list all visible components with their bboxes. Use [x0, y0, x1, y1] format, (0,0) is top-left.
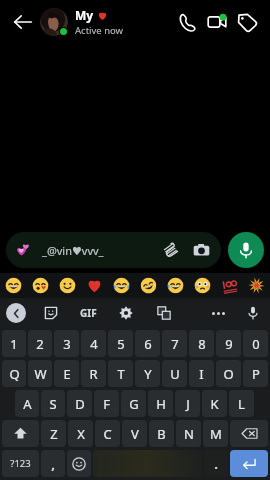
button[interactable]: X: [68, 420, 93, 447]
button[interactable]: Backspace: [230, 420, 268, 447]
button[interactable]: E: [54, 360, 79, 387]
button[interactable]: Tag: [232, 7, 262, 37]
staticText: Z: [50, 425, 58, 443]
button[interactable]: 0: [243, 330, 268, 357]
button[interactable]: 6: [135, 330, 160, 357]
button[interactable]: P: [243, 360, 268, 387]
button[interactable]: S: [41, 390, 65, 417]
staticText: E: [63, 365, 71, 383]
staticText: H: [156, 395, 166, 413]
staticText: X: [77, 425, 85, 443]
button[interactable]: F: [94, 390, 119, 417]
button[interactable]: M: [203, 420, 228, 447]
button[interactable]: D: [67, 390, 92, 417]
staticText: U: [170, 365, 180, 383]
button[interactable]: _@vin♥vvv_: [6, 232, 221, 268]
button[interactable]: 5: [108, 330, 133, 357]
staticText: GIF: [80, 306, 97, 320]
button[interactable]: .: [204, 450, 228, 477]
button[interactable]: H: [148, 390, 173, 417]
button[interactable]: L: [229, 390, 254, 417]
button[interactable]: My: [40, 7, 172, 37]
button[interactable]: O: [216, 360, 241, 387]
staticText: 7: [171, 335, 179, 353]
staticText: 2: [36, 335, 44, 353]
staticText: 9: [225, 335, 233, 353]
staticText: M: [210, 425, 222, 443]
button[interactable]: Space: [93, 450, 202, 477]
staticText: B: [157, 425, 166, 443]
button[interactable]: T: [108, 360, 133, 387]
button[interactable]: Emoji: [189, 273, 216, 298]
staticText: 1: [10, 335, 18, 353]
staticText: V: [131, 425, 139, 443]
button[interactable]: ?123: [2, 450, 39, 477]
button[interactable]: Emoji: [108, 273, 135, 298]
button[interactable]: G: [121, 390, 146, 417]
staticText: _@vin♥vvv_: [42, 243, 161, 258]
button[interactable]: 3: [54, 330, 79, 357]
button[interactable]: I: [189, 360, 214, 387]
button[interactable]: Voice call: [172, 7, 202, 37]
button[interactable]: Voice message: [228, 232, 264, 268]
button[interactable]: U: [162, 360, 187, 387]
button[interactable]: Enter: [230, 450, 268, 477]
button[interactable]: 1: [2, 330, 26, 357]
button[interactable]: N: [176, 420, 201, 447]
staticText: .: [214, 455, 218, 473]
button[interactable]: Translate: [153, 302, 175, 324]
button[interactable]: GIF: [78, 304, 99, 322]
button[interactable]: V: [122, 420, 147, 447]
button[interactable]: Emoji: [0, 273, 27, 298]
button[interactable]: Q: [2, 360, 26, 387]
staticText: 6: [144, 335, 152, 353]
staticText: I: [199, 365, 204, 383]
button[interactable]: Emoji: [54, 273, 81, 298]
button[interactable]: Z: [41, 420, 66, 447]
staticText: 4: [90, 335, 98, 353]
button[interactable]: K: [202, 390, 227, 417]
staticText: K: [210, 395, 219, 413]
button[interactable]: Emoji: [243, 273, 270, 298]
button[interactable]: Shift: [2, 420, 39, 447]
button[interactable]: Camera: [191, 240, 211, 260]
staticText: My: [75, 7, 97, 23]
button[interactable]: Y: [135, 360, 160, 387]
staticText: T: [117, 365, 125, 383]
button[interactable]: Settings: [115, 302, 137, 324]
staticText: 5: [117, 335, 125, 353]
staticText: P: [252, 365, 260, 383]
button[interactable]: Emoji: [81, 273, 108, 298]
button[interactable]: ,: [41, 450, 65, 477]
button[interactable]: Voice input: [242, 302, 264, 324]
button[interactable]: Emoji: [67, 450, 91, 477]
button[interactable]: 7: [162, 330, 187, 357]
button[interactable]: Emoji: [135, 273, 162, 298]
button[interactable]: B: [149, 420, 174, 447]
button[interactable]: Attach: [161, 240, 181, 260]
button[interactable]: R: [81, 360, 106, 387]
staticText: R: [89, 365, 98, 383]
button[interactable]: W: [28, 360, 52, 387]
staticText: G: [129, 395, 139, 413]
button[interactable]: Stickers: [40, 302, 62, 324]
staticText: S: [49, 395, 57, 413]
button[interactable]: Back: [8, 7, 38, 37]
staticText: C: [103, 425, 112, 443]
button[interactable]: More options: [206, 301, 230, 325]
button[interactable]: Video call: [202, 7, 232, 37]
button[interactable]: 2: [28, 330, 52, 357]
button[interactable]: Emoji: [162, 273, 189, 298]
button[interactable]: Emoji: [216, 273, 243, 298]
button[interactable]: Close toolbar: [6, 303, 26, 323]
button[interactable]: 8: [189, 330, 214, 357]
button[interactable]: Emoji: [27, 273, 54, 298]
button[interactable]: 4: [81, 330, 106, 357]
button[interactable]: 9: [216, 330, 241, 357]
staticText: O: [223, 365, 234, 383]
button[interactable]: C: [95, 420, 120, 447]
button[interactable]: A: [15, 390, 39, 417]
staticText: W: [34, 365, 47, 383]
staticText: 8: [198, 335, 206, 353]
button[interactable]: J: [175, 390, 200, 417]
